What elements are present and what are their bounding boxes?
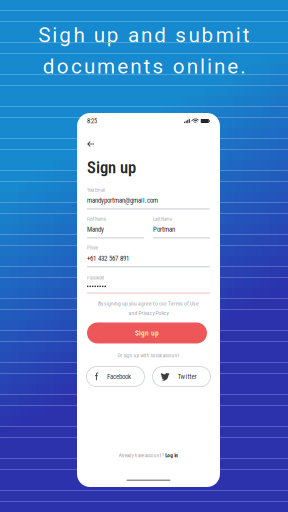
staticText: Twitter (178, 372, 197, 381)
staticText: Sign up (87, 158, 136, 177)
staticText: Sigh up and submit (38, 23, 250, 47)
staticText: Already have account? (119, 452, 164, 458)
staticText: 8:25 (87, 117, 97, 125)
staticText: documents online. (43, 54, 245, 78)
button[interactable]: Sign up (87, 322, 207, 343)
staticText: and Privacy Policy (128, 310, 168, 316)
staticText: Password (87, 275, 104, 281)
staticText: Log in (165, 452, 178, 458)
staticText: Last Name (153, 216, 172, 222)
button[interactable]: Back (87, 140, 105, 148)
button[interactable]: Already have account? (87, 452, 210, 458)
button[interactable]: Twitter (152, 367, 210, 387)
staticText: First Name (87, 216, 106, 222)
staticText: +61 432 567 891 (87, 254, 129, 262)
staticText: Sign up (135, 329, 159, 337)
staticText: Portman (153, 225, 175, 233)
button[interactable]: Facebook (86, 367, 144, 387)
staticText: Your Email (87, 187, 105, 193)
staticText: mandyportman@gmail.com (87, 196, 158, 204)
staticText: Or sign up with social account (117, 352, 179, 359)
staticText: Phone (87, 245, 98, 251)
staticText: Facebook (107, 372, 131, 381)
staticText: Mandy (87, 225, 104, 233)
staticText: By signing up you agree to our Terms of … (98, 300, 199, 307)
